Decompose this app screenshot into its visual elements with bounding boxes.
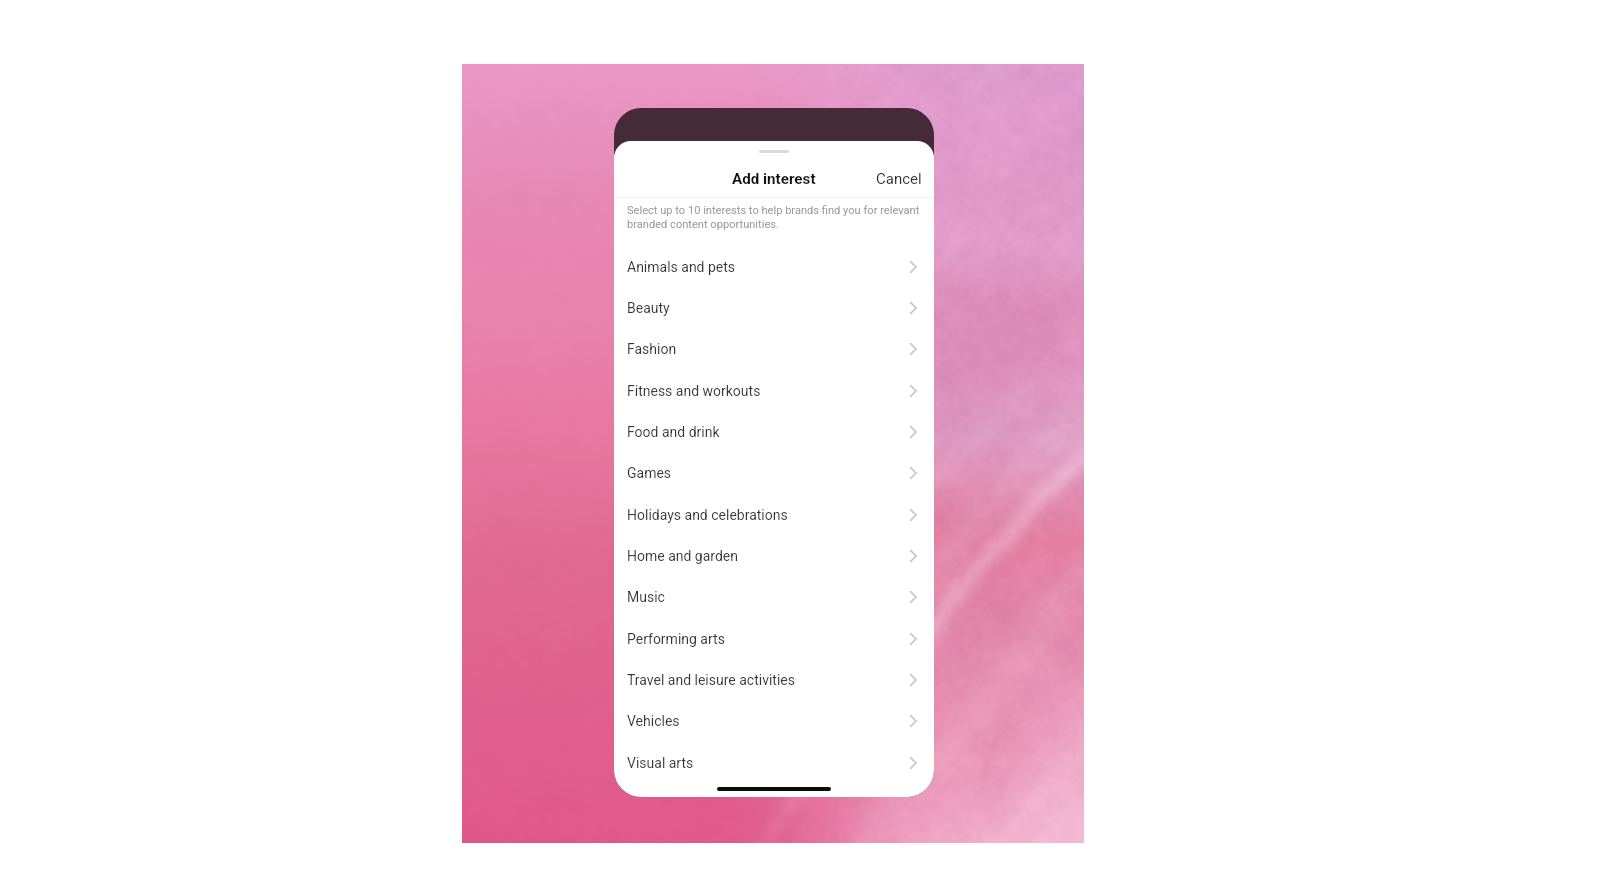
staticText: Fashion <box>627 341 677 357</box>
staticText: Vehicles <box>627 713 680 729</box>
other: Open Holidays and celebrations <box>909 508 917 522</box>
staticText: Add interest <box>732 170 816 188</box>
other: Open Travel and leisure activities <box>909 673 917 687</box>
other: Open Beauty <box>909 301 917 315</box>
staticText: Games <box>627 465 672 481</box>
staticText: Visual arts <box>627 755 694 771</box>
button[interactable]: Food and drink <box>614 411 934 452</box>
button[interactable]: Home and garden <box>614 535 934 576</box>
staticText: Cancel <box>876 170 922 188</box>
other: Open Games <box>909 466 917 480</box>
button[interactable]: Visual arts <box>614 742 934 783</box>
button[interactable]: Drag handle <box>614 144 934 159</box>
staticText: Select up to 10 interests to help brands… <box>627 204 923 230</box>
other: Open Performing arts <box>909 632 917 646</box>
other: Open Fitness and workouts <box>909 384 917 398</box>
staticText: Beauty <box>627 300 670 316</box>
staticText: Holidays and celebrations <box>627 507 788 523</box>
staticText: Home and garden <box>627 548 739 564</box>
button[interactable]: Travel and leisure activities <box>614 659 934 700</box>
other: Open Animals and pets <box>909 260 917 274</box>
other: Open Home and garden <box>909 549 917 563</box>
button[interactable]: Fitness and workouts <box>614 370 934 411</box>
staticText: Travel and leisure activities <box>627 672 795 688</box>
button[interactable]: Holidays and celebrations <box>614 494 934 535</box>
staticText: Fitness and workouts <box>627 383 761 399</box>
button[interactable]: Music <box>614 576 934 617</box>
button[interactable]: Fashion <box>614 328 934 369</box>
other: Open Vehicles <box>909 714 917 728</box>
button[interactable]: Beauty <box>614 287 934 328</box>
button[interactable]: Games <box>614 452 934 493</box>
staticText: Animals and pets <box>627 259 736 275</box>
other: Open Music <box>909 590 917 604</box>
staticText: Performing arts <box>627 631 725 647</box>
staticText: Music <box>627 589 665 605</box>
other: Open Fashion <box>909 342 917 356</box>
button[interactable]: Vehicles <box>614 700 934 741</box>
button[interactable]: Performing arts <box>614 618 934 659</box>
button[interactable]: Cancel <box>862 160 934 198</box>
other: Open Food and drink <box>909 425 917 439</box>
button[interactable]: Animals and pets <box>614 246 934 287</box>
staticText: Food and drink <box>627 424 720 440</box>
other: Open Visual arts <box>909 756 917 770</box>
